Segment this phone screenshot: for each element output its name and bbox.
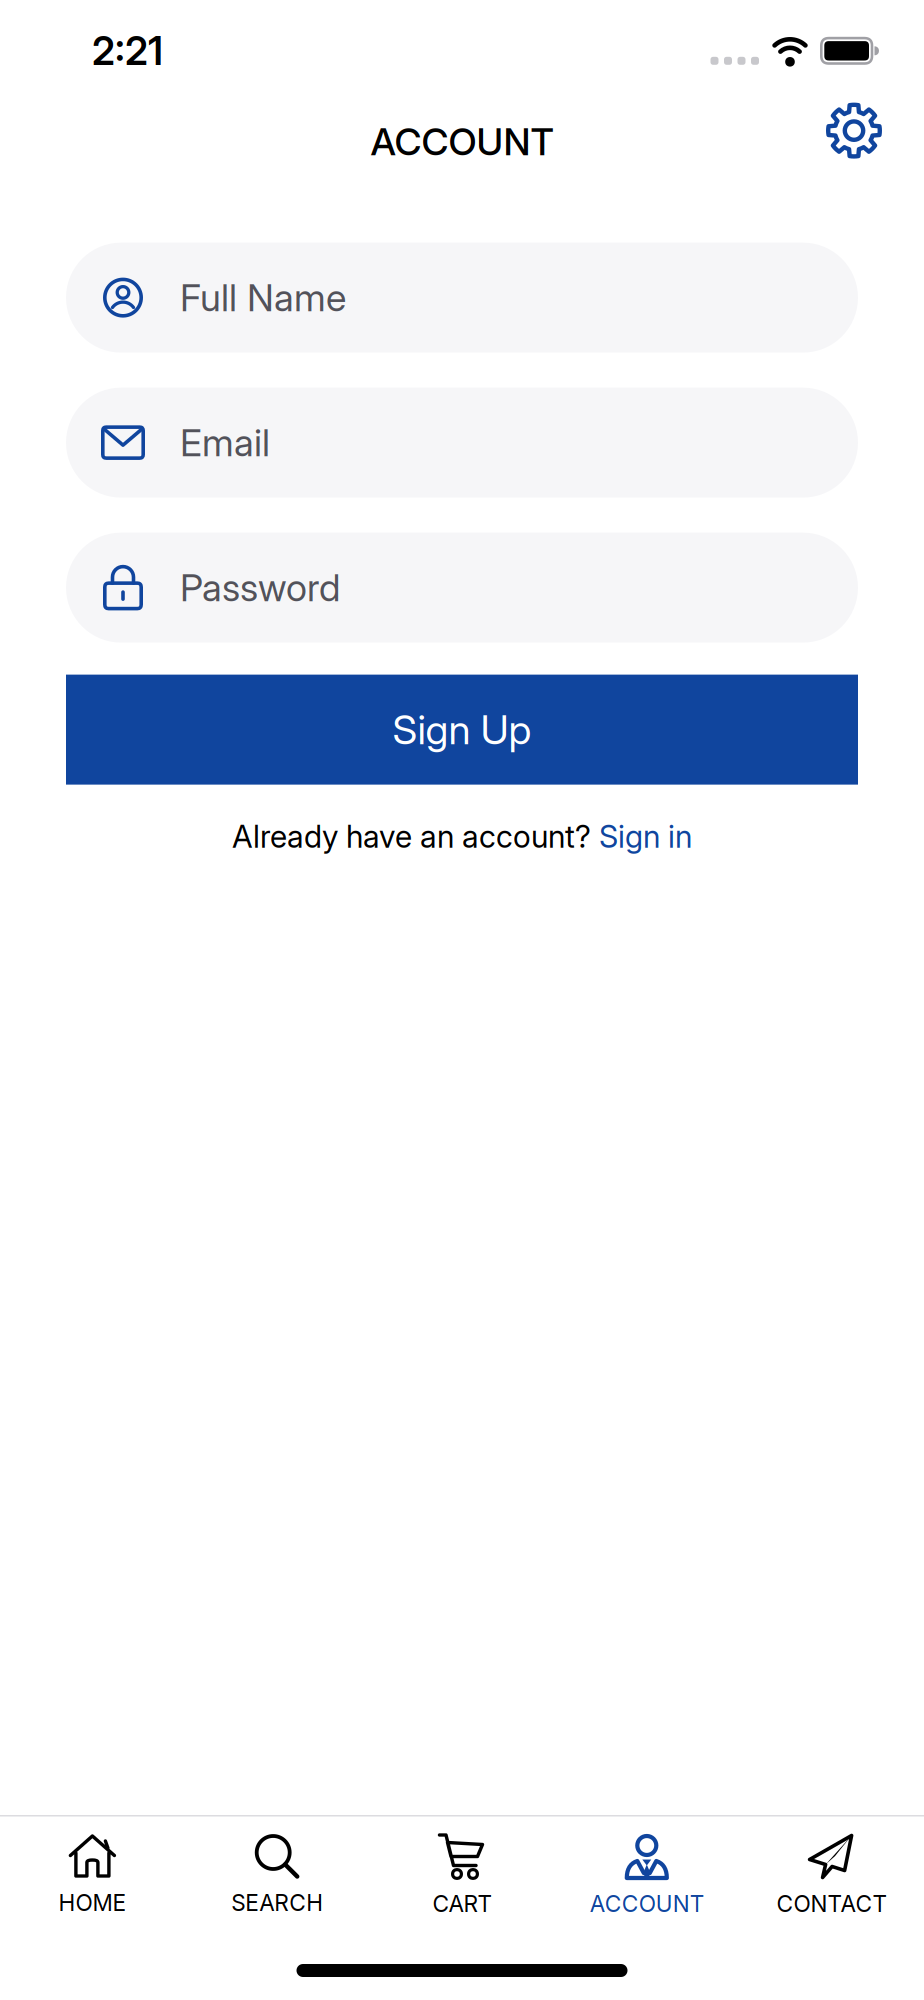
staticText: Already have an account? [232, 819, 599, 855]
button[interactable]: Sign in [599, 819, 692, 855]
staticText: CONTACT [777, 1890, 887, 1917]
button[interactable]: HOME [0, 1833, 185, 1916]
staticText: SEARCH [231, 1889, 323, 1916]
staticText: ACCOUNT [590, 1890, 704, 1917]
staticText: Email [180, 421, 270, 465]
button[interactable]: ACCOUNT [554, 1832, 739, 1917]
button[interactable]: Password [66, 533, 858, 643]
staticText: Sign in [599, 819, 692, 855]
button[interactable]: CONTACT [739, 1832, 924, 1917]
button[interactable]: CART [370, 1832, 554, 1917]
staticText: HOME [58, 1889, 126, 1916]
staticText: Sign Up [392, 706, 531, 753]
button[interactable] [826, 103, 882, 159]
staticText: CART [432, 1890, 491, 1917]
button[interactable]: SEARCH [185, 1833, 370, 1916]
button[interactable]: Full Name [66, 243, 858, 353]
staticText: Password [180, 566, 340, 610]
staticText: ACCOUNT [370, 120, 553, 164]
button[interactable]: Email [66, 388, 858, 498]
staticText: Full Name [180, 276, 346, 320]
button[interactable]: Sign Up [66, 675, 858, 785]
staticText: 2:21 [92, 28, 163, 74]
